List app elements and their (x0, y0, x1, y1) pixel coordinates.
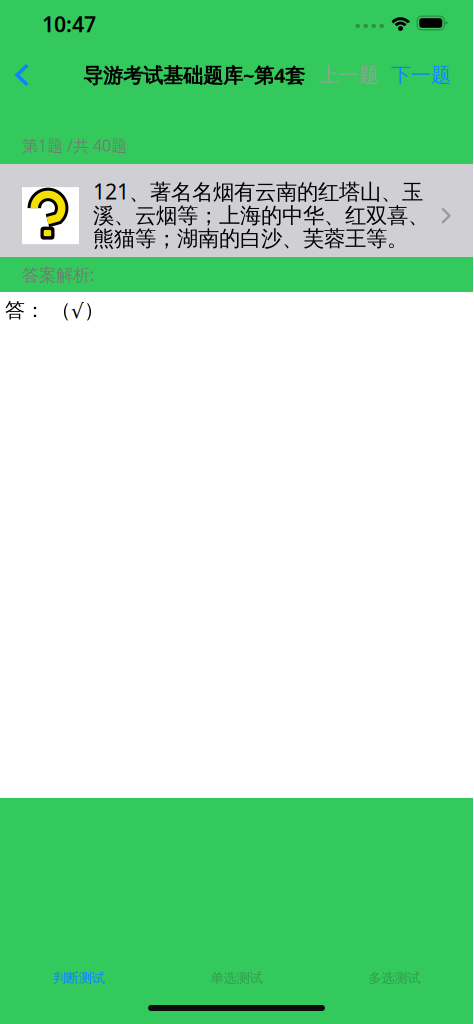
staticText: 多选测试 (368, 970, 420, 986)
button[interactable]: 上一题 (309, 53, 379, 97)
staticText: 上一题 (319, 63, 379, 87)
staticText: 下一题 (391, 63, 451, 87)
staticText: 答： （√） (5, 298, 104, 323)
staticText: 答案解析: (22, 263, 95, 286)
staticText: 第1题 /共 40题 (22, 135, 127, 156)
staticText: 121、著名名烟有云南的红塔山、玉溪、云烟等；上海的中华、红双喜、熊猫等；湖南的… (93, 177, 429, 252)
staticText: 10:47 (42, 10, 96, 38)
staticText: 判断测试 (53, 970, 105, 986)
button[interactable]: 多选测试 (315, 964, 473, 992)
button[interactable]: 121、著名名烟有云南的红塔山、玉溪、云烟等；上海的中华、红双喜、熊猫等；湖南的… (0, 164, 473, 257)
staticText: 导游考试基础题库~第4套 (83, 62, 305, 88)
staticText: 单选测试 (210, 970, 262, 986)
button[interactable]: 判断测试 (0, 964, 158, 992)
button[interactable]: 单选测试 (158, 964, 315, 992)
button[interactable]: 下一题 (379, 53, 473, 97)
button[interactable]: Back (0, 53, 43, 96)
